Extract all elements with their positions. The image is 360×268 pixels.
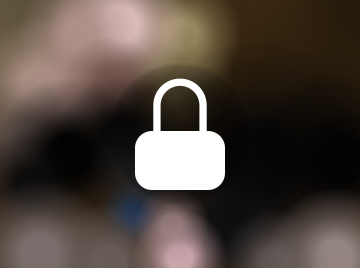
button[interactable]: Locked bbox=[108, 62, 252, 206]
